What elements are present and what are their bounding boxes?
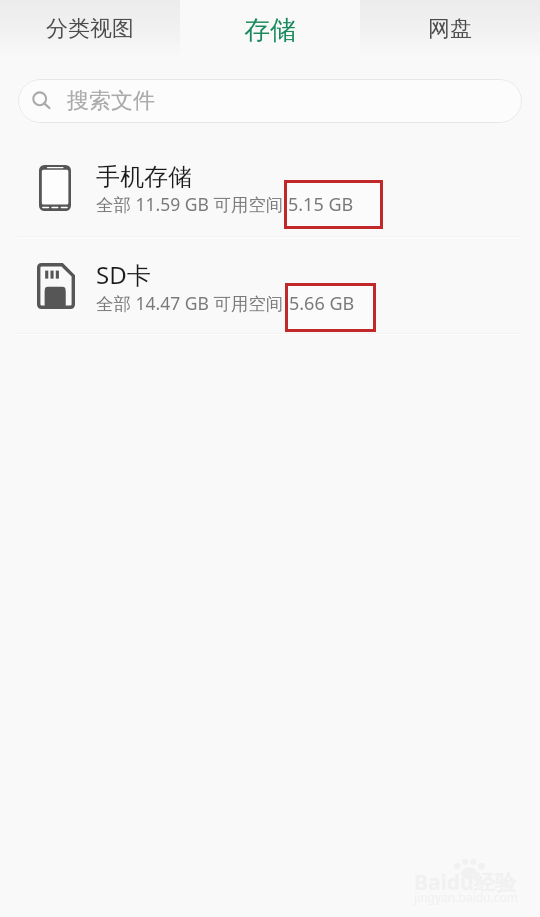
staticText: 5.66 GB xyxy=(289,291,355,316)
staticText: 全部 14.47 GB 可用空间 xyxy=(96,291,284,315)
staticText: 手机存储 xyxy=(96,162,192,192)
other: Search xyxy=(32,91,52,111)
button[interactable]: 网盘 xyxy=(360,0,540,56)
button[interactable]: 分类视图 xyxy=(0,0,180,56)
staticText: SD卡 xyxy=(96,258,151,291)
staticText: 存储 xyxy=(244,14,296,47)
staticText: jingyan.baidu.com xyxy=(414,889,518,905)
staticText: Baidu经验 xyxy=(414,868,516,897)
staticText: 搜索文件 xyxy=(67,87,155,115)
staticText: 分类视图 xyxy=(46,15,134,43)
button[interactable]: Search xyxy=(18,79,522,123)
staticText: 全部 11.59 GB 可用空间 xyxy=(96,192,284,216)
button[interactable]: 手机存储 xyxy=(0,142,540,236)
staticText: 5.15 GB xyxy=(288,192,354,217)
button[interactable]: SD卡 xyxy=(0,241,540,335)
button[interactable]: 存储 xyxy=(180,0,360,56)
staticText: 网盘 xyxy=(428,15,472,43)
